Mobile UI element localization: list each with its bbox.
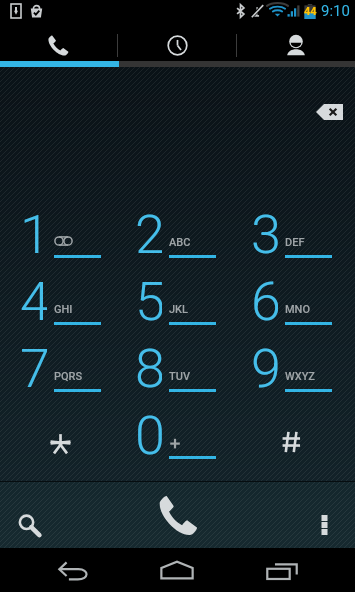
button[interactable]: 8 (116, 341, 234, 408)
staticText: DEF (285, 236, 305, 249)
button[interactable]: 6 (232, 274, 350, 341)
staticText: 44 (304, 5, 317, 18)
button[interactable]: Star (1, 408, 119, 475)
staticText: 1 (20, 203, 47, 259)
button[interactable]: Contacts tab (237, 25, 355, 65)
button[interactable]: Home (147, 548, 207, 592)
button[interactable]: Call log tab (118, 25, 236, 65)
button[interactable]: Recents (252, 548, 312, 592)
staticText: 7 (20, 337, 47, 393)
staticText: 2 (135, 203, 162, 259)
staticText: WXYZ (285, 370, 315, 383)
button[interactable]: Backspace (307, 96, 352, 128)
staticText: GHI (54, 303, 73, 316)
button[interactable]: 2 (116, 207, 234, 274)
button[interactable]: 5 (116, 274, 234, 341)
button[interactable]: 4 (1, 274, 119, 341)
staticText: 0 (135, 404, 162, 460)
button[interactable]: 7 (1, 341, 119, 408)
button[interactable]: 9 (232, 341, 350, 408)
staticText: 4 (20, 270, 47, 326)
staticText: 3 (251, 203, 278, 259)
button[interactable]: Back (44, 548, 104, 592)
staticText: 8 (135, 337, 162, 393)
staticText: ABC (169, 236, 191, 249)
button[interactable]: 1 (1, 207, 119, 274)
staticText: JKL (169, 303, 189, 316)
button[interactable]: Dialpad tab (0, 25, 117, 65)
button[interactable]: More options (302, 503, 346, 547)
button[interactable]: Search (5, 501, 53, 549)
button[interactable]: Pound (232, 408, 350, 475)
staticText: TUV (169, 370, 191, 383)
staticText: 9:10 (321, 2, 350, 20)
staticText: 5 (135, 270, 162, 326)
staticText: 9 (251, 337, 278, 393)
staticText: MNO (285, 303, 311, 316)
button[interactable]: 3 (232, 207, 350, 274)
button[interactable]: Call (145, 482, 211, 548)
button[interactable]: 0 (116, 408, 234, 475)
staticText: PQRS (54, 370, 83, 383)
staticText: 6 (251, 270, 278, 326)
